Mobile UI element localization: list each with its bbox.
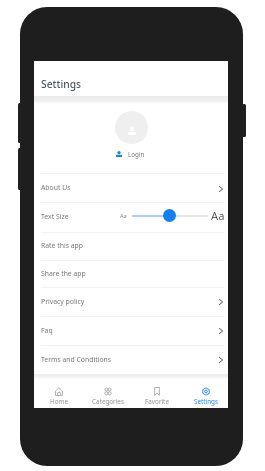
button[interactable]: Privacy policy — [34, 288, 228, 316]
staticText: Settings — [194, 397, 218, 406]
staticText: Categories — [92, 397, 124, 406]
staticText: Terms and Conditions — [41, 355, 112, 364]
button[interactable]: Settings — [34, 61, 228, 96]
button[interactable]: About Us — [34, 174, 228, 203]
staticText: About Us — [41, 183, 71, 192]
staticText: Privacy policy — [41, 297, 85, 306]
staticText: Home — [50, 397, 68, 406]
button[interactable]: Profile photo — [115, 111, 148, 144]
button[interactable]: Settings — [181, 374, 230, 408]
button[interactable]: Faq — [34, 317, 228, 345]
staticText: Share the app — [41, 269, 86, 278]
button[interactable]: Home — [34, 374, 83, 408]
staticText: Rate this app — [41, 241, 83, 250]
button[interactable]: Rate this app — [34, 232, 228, 260]
button[interactable]: Text Size — [34, 203, 228, 231]
staticText: Aa — [211, 208, 225, 223]
staticText: Faq — [41, 326, 53, 335]
button[interactable]: Login — [116, 150, 145, 158]
button[interactable]: Categories — [83, 374, 132, 408]
button[interactable]: Share the app — [34, 261, 228, 287]
staticText: Settings — [41, 77, 82, 91]
staticText: Favorite — [145, 397, 169, 406]
staticText: Text Size — [41, 212, 69, 221]
staticText: Login — [128, 150, 145, 158]
staticText: Aa — [120, 212, 127, 220]
button[interactable]: Favorite — [132, 374, 181, 408]
button[interactable]: Terms and Conditions — [34, 346, 228, 374]
